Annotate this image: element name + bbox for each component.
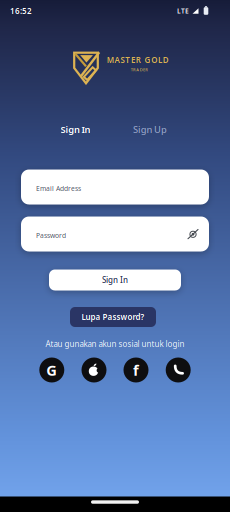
staticText: LTE — [177, 7, 189, 15]
button[interactable]: Email Address — [21, 169, 209, 204]
button[interactable]: Sign in with Apple — [81, 357, 106, 382]
staticText: Email Address — [36, 184, 81, 193]
button[interactable]: Sign In — [61, 123, 90, 136]
button[interactable]: Sign in with Facebook — [123, 357, 148, 382]
staticText: f — [133, 360, 139, 380]
button[interactable]: Sign in with phone — [166, 357, 191, 382]
staticText: Password — [36, 231, 66, 240]
button[interactable]: Sign Up — [133, 123, 167, 136]
staticText: G — [46, 360, 57, 380]
button[interactable]: Sign in with Google — [39, 357, 64, 382]
button[interactable]: Password — [21, 216, 209, 251]
button[interactable]: Sign In — [49, 269, 181, 290]
staticText: 16:52 — [10, 6, 32, 16]
button[interactable]: Lupa Password? — [70, 307, 156, 327]
button[interactable]: Show password — [187, 228, 199, 239]
staticText: TRADER — [131, 67, 148, 72]
staticText: Atau gunakan akun sosial untuk login — [45, 339, 184, 349]
staticText: MASTER GOLD — [107, 54, 169, 65]
staticText: Sign In — [102, 275, 128, 285]
staticText: Lupa Password? — [81, 312, 144, 322]
staticText: Sign Up — [133, 123, 167, 136]
staticText: Sign In — [61, 123, 90, 136]
